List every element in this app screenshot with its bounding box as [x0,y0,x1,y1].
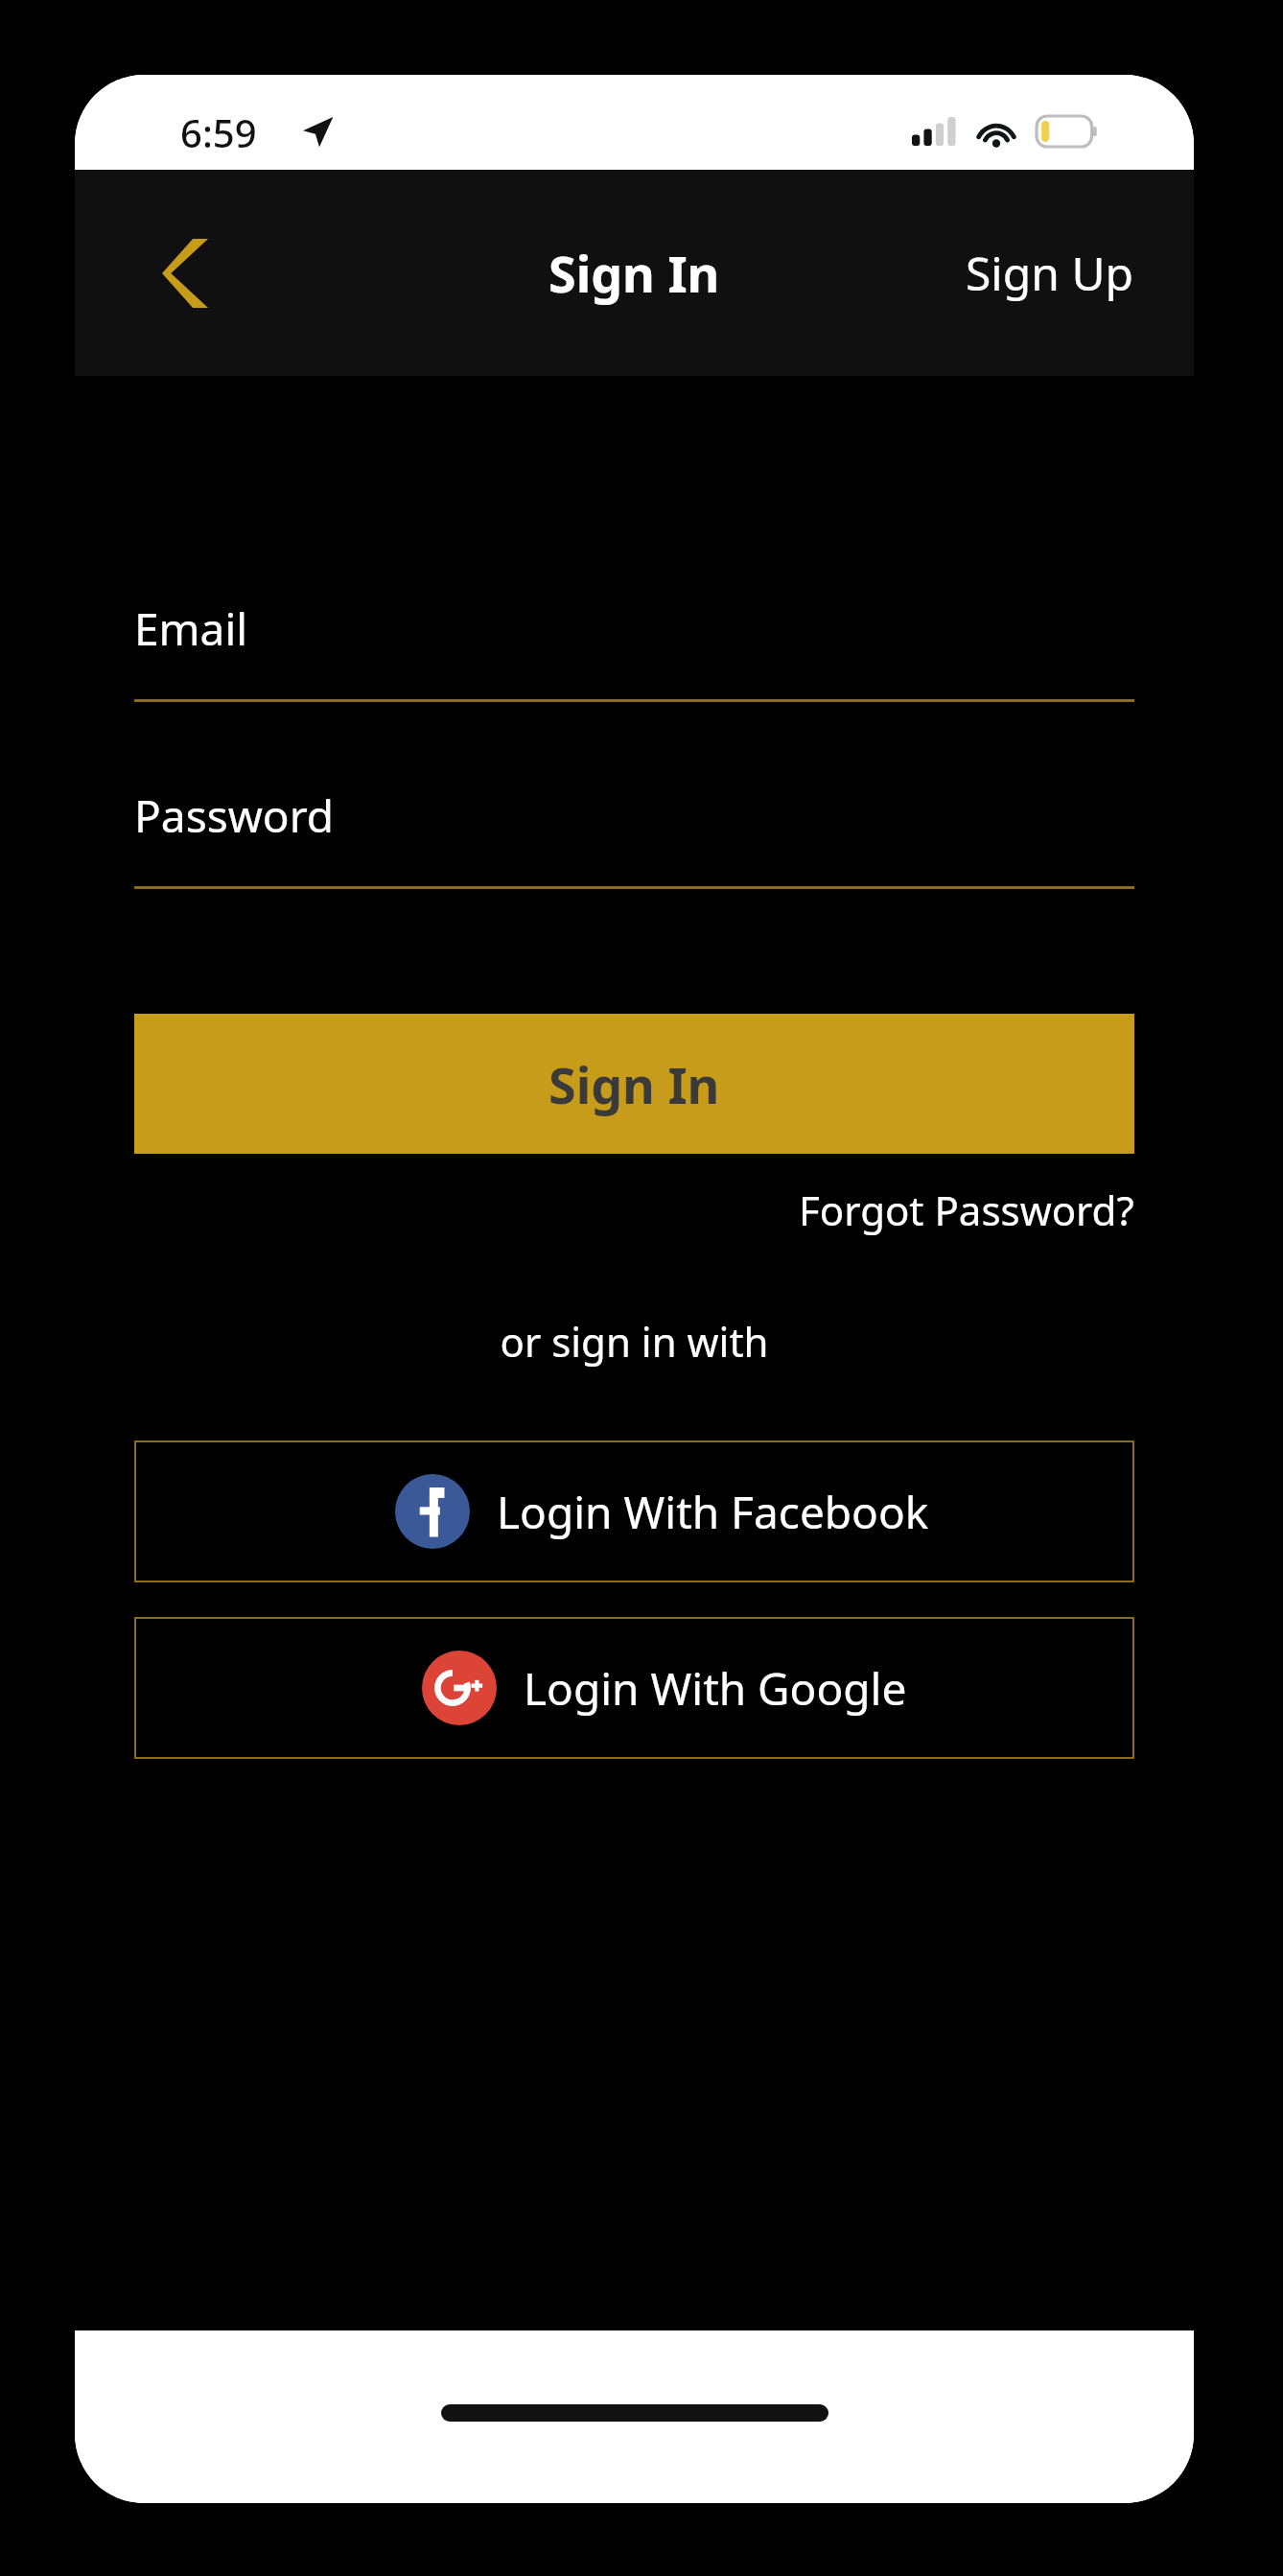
button[interactable]: Password [134,785,1134,889]
button[interactable]: Sign In [134,1014,1134,1154]
staticText: Sign Up [966,242,1134,304]
staticText: Forgot Password? [799,1183,1134,1237]
staticText: or sign in with [75,1314,1194,1369]
staticText: Password [134,785,335,846]
button[interactable]: Login With Google [134,1617,1134,1759]
button[interactable]: Email [134,598,1134,702]
staticText: Email [134,598,248,659]
staticText: 6:59 [180,106,257,158]
staticText: Login With Google [524,1658,907,1719]
button[interactable]: Sign Up [945,221,1155,325]
staticText: Sign In [548,239,720,307]
staticText: Sign In [548,1050,720,1118]
button[interactable]: Forgot Password? [789,1175,1144,1245]
button[interactable]: Login With Facebook [134,1440,1134,1582]
button[interactable]: Back [142,230,228,316]
staticText: Login With Facebook [497,1482,929,1542]
